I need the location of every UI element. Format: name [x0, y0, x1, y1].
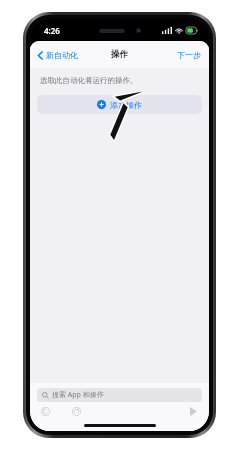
staticText: 搜索 App 和操作 [52, 390, 104, 400]
button[interactable]: Run [187, 404, 200, 419]
staticText: 添加操作 [110, 100, 142, 110]
button[interactable]: 新自动化 [30, 46, 84, 64]
staticText: 4:26 [44, 25, 60, 36]
button[interactable]: 下一步 [169, 45, 209, 65]
button[interactable]: 添加操作 [37, 95, 202, 114]
staticText: 新自动化 [46, 50, 78, 60]
button[interactable]: 搜索 App 和操作 [37, 388, 202, 402]
button[interactable]: Redo [70, 405, 83, 418]
staticText: 操作 [111, 49, 128, 60]
button[interactable]: Undo [39, 405, 52, 418]
staticText: 选取此自动化将运行的操作。 [40, 76, 138, 85]
